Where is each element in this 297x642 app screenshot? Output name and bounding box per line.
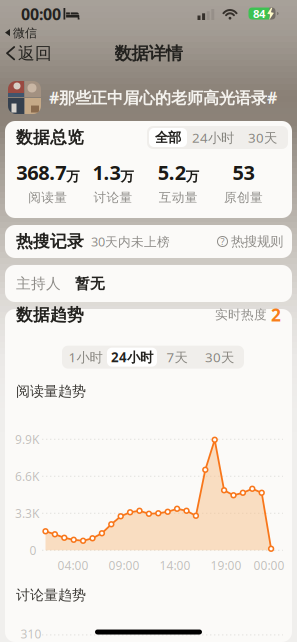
staticText: 全部: [155, 129, 181, 146]
staticText: 19:00: [210, 557, 241, 573]
button[interactable]: 24小时: [187, 128, 239, 147]
staticText: 53: [232, 159, 254, 186]
staticText: 3.3K: [15, 505, 39, 521]
staticText: 30天内未上榜: [91, 233, 170, 250]
staticText: 1小时: [68, 348, 102, 366]
button[interactable]: 全部: [149, 128, 187, 147]
staticText: 7天: [166, 348, 187, 366]
staticText: 讨论量: [93, 190, 132, 206]
staticText: 0: [29, 542, 36, 558]
staticText: 实时热度: [215, 307, 267, 323]
button[interactable]: 1小时: [64, 348, 107, 367]
staticText: 5.2万: [158, 159, 199, 186]
staticText: 1.3万: [92, 159, 133, 186]
staticText: 返回: [18, 43, 52, 64]
staticText: 原创量: [224, 190, 263, 206]
staticText: 热搜规则: [231, 233, 283, 250]
staticText: 阅读量趋势: [16, 383, 86, 400]
staticText: 互动量: [159, 190, 198, 206]
staticText: 9.9K: [15, 431, 39, 447]
staticText: 310: [20, 626, 41, 642]
staticText: 24小时: [111, 348, 153, 366]
staticText: 讨论量趋势: [16, 586, 86, 604]
staticText: 阅读量: [28, 190, 67, 206]
button[interactable]: 微信: [0, 25, 37, 40]
staticText: 14:00: [159, 557, 190, 573]
staticText: 368.7万: [16, 159, 79, 186]
button[interactable]: 7天: [157, 348, 197, 367]
staticText: ?: [220, 235, 224, 248]
staticText: 微信: [13, 25, 37, 40]
button[interactable]: ?: [217, 233, 283, 250]
button[interactable]: 30天: [197, 348, 242, 367]
staticText: 30天: [205, 348, 234, 366]
button[interactable]: 24小时: [107, 348, 157, 367]
button[interactable]: 返回: [0, 40, 52, 67]
staticText: 84: [253, 6, 265, 21]
button[interactable]: 30天: [239, 128, 286, 147]
staticText: 主持人: [16, 274, 61, 293]
staticText: 数据详情: [114, 43, 182, 64]
staticText: 00:00: [21, 3, 61, 25]
staticText: 6.6K: [15, 468, 39, 484]
button[interactable]: #那些正中眉心的老师高光语录#: [0, 67, 277, 114]
staticText: 30天: [248, 128, 277, 147]
staticText: 09:00: [108, 557, 139, 573]
staticText: 04:00: [57, 557, 88, 573]
staticText: 数据总览: [16, 127, 84, 148]
staticText: 暂无: [75, 274, 105, 293]
staticText: 数据趋势: [16, 304, 84, 325]
staticText: 24小时: [192, 128, 234, 147]
staticText: 热搜记录: [16, 231, 84, 252]
staticText: 00:00: [253, 557, 284, 573]
staticText: 2: [271, 303, 281, 327]
staticText: #那些正中眉心的老师高光语录#: [49, 87, 277, 108]
